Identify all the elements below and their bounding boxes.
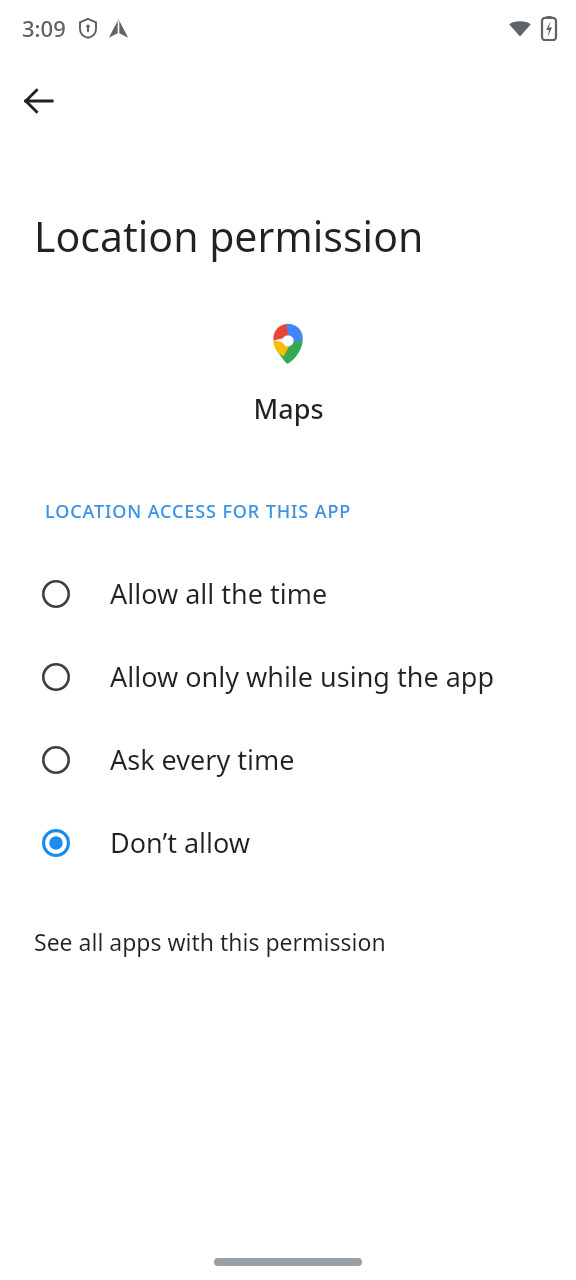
button[interactable]: Allow all the time (0, 552, 576, 635)
staticText: LOCATION ACCESS FOR THIS APP (45, 499, 352, 524)
button[interactable]: Back (10, 72, 68, 130)
button[interactable]: Allow only while using the app (0, 635, 576, 718)
staticText: Don’t allow (110, 824, 251, 861)
staticText: Maps (253, 390, 324, 427)
staticText: Allow all the time (110, 575, 328, 612)
button[interactable]: Don’t allow (0, 801, 576, 884)
staticText: Ask every time (110, 741, 295, 778)
button[interactable]: See all apps with this permission (0, 922, 386, 961)
button[interactable]: Ask every time (0, 718, 576, 801)
staticText: Allow only while using the app (110, 658, 495, 695)
staticText: Location permission (34, 208, 424, 264)
staticText: 3:09 (22, 13, 66, 43)
